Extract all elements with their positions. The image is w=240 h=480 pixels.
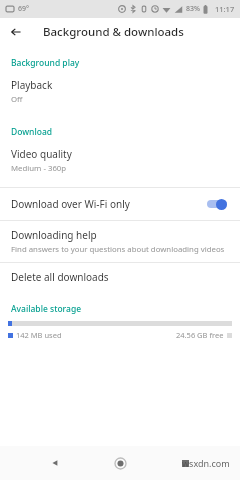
staticText: Off [11,94,23,105]
staticText: Available storage [11,303,82,315]
staticText: 69° [18,4,29,14]
staticText: wsxdn.com [182,457,230,469]
staticText: Downloading help [11,228,97,242]
staticText: 11:17 [215,4,235,14]
staticText: 83% [186,4,200,14]
staticText: Download over Wi-Fi only [11,197,205,211]
staticText: Download [11,126,53,138]
staticText: Medium - 360p [11,163,67,174]
button[interactable]: Downloading help [0,221,240,262]
button[interactable]: Playback [0,71,240,112]
staticText: Background & downloads [43,24,184,40]
button[interactable]: Back [44,452,66,474]
button[interactable]: Back [5,21,27,43]
button[interactable]: Home [108,451,132,475]
staticText: Background play [11,57,80,69]
button[interactable]: Delete all downloads [0,263,240,291]
staticText: 24.56 GB free [176,330,224,340]
button[interactable]: Recents [174,452,196,474]
button[interactable]: Download over Wi-Fi only [0,188,240,220]
staticText: Video quality [11,147,72,161]
staticText: Delete all downloads [11,270,109,284]
staticText: 142 MB used [16,330,62,340]
button[interactable]: Video quality [0,140,240,181]
staticText: Playback [11,78,53,92]
staticText: Find answers to your questions about dow… [11,244,225,255]
